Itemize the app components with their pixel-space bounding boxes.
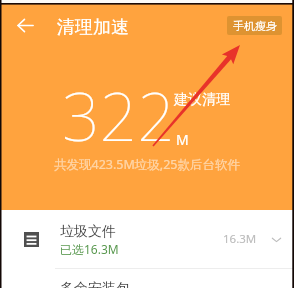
staticText: 手机瘦身 (233, 19, 277, 33)
staticText: 已选16.3M (60, 241, 119, 257)
staticText: 清理加速 (57, 16, 129, 39)
button[interactable]: 手机瘦身 (227, 16, 282, 35)
staticText: 322 (62, 70, 175, 160)
staticText: 垃圾文件 (60, 223, 116, 241)
staticText: 多余安装包 (60, 280, 130, 288)
button[interactable]: 多余安装包 (0, 269, 294, 288)
staticText: 16.3M (223, 231, 257, 247)
button[interactable]: Back (0, 3, 48, 47)
staticText: 建议清理 (174, 91, 230, 109)
staticText: M (176, 130, 189, 149)
button[interactable]: 垃圾文件 (0, 210, 294, 268)
staticText: 共发现423.5M垃圾,25款后台软件 (54, 156, 240, 173)
